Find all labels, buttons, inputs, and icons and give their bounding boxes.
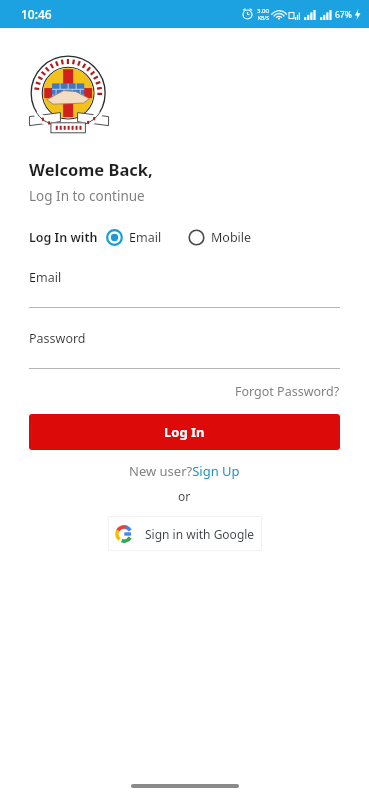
- staticText: Log In to continue: [29, 187, 145, 205]
- staticText: KB/S: [258, 15, 269, 22]
- staticText: 67%: [335, 9, 352, 21]
- button[interactable]: Password: [29, 330, 340, 369]
- staticText: or: [178, 488, 191, 504]
- button[interactable]: Forgot Password?: [29, 381, 340, 402]
- staticText: Email: [129, 229, 162, 246]
- staticText: Password: [29, 330, 86, 347]
- staticText: 10:46: [21, 6, 52, 22]
- staticText: Log In: [164, 423, 205, 441]
- staticText: Log In with: [29, 229, 98, 246]
- button[interactable]: New user?Sign Up: [29, 462, 340, 480]
- staticText: 3.00: [257, 7, 269, 15]
- staticText: Mobile: [211, 229, 252, 246]
- staticText: Forgot Password?: [235, 383, 340, 400]
- staticText: New user?Sign Up: [129, 462, 240, 480]
- button[interactable]: Log In: [29, 414, 340, 450]
- staticText: Welcome Back,: [29, 158, 153, 180]
- button[interactable]: Email: [104, 226, 164, 249]
- button[interactable]: Email: [29, 269, 340, 308]
- staticText: Sign in with Google: [145, 526, 255, 542]
- staticText: Email: [29, 269, 62, 286]
- button[interactable]: Mobile: [186, 226, 254, 249]
- button[interactable]: Sign in with Google: [108, 516, 262, 551]
